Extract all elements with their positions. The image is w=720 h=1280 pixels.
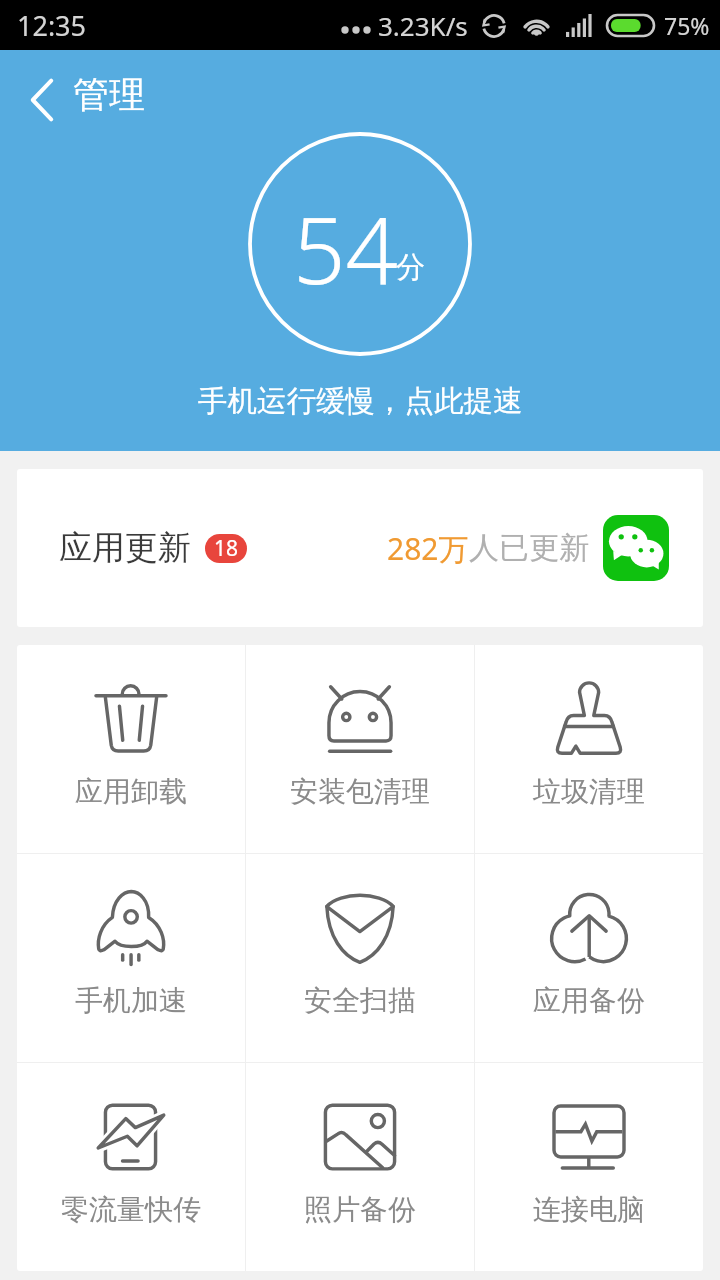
staticText: 连接电脑 (533, 1192, 645, 1227)
staticText: 18 (214, 534, 239, 563)
staticText: 手机运行缓慢，点此提速 (198, 383, 523, 420)
staticText: 安装包清理 (290, 774, 430, 809)
staticText: 手机加速 (75, 983, 187, 1018)
button[interactable]: 连接电脑 (475, 1063, 703, 1271)
staticText: 应用备份 (533, 983, 645, 1018)
staticText: 零流量快传 (61, 1192, 201, 1227)
staticText: 282万 (387, 528, 469, 569)
button[interactable]: 零流量快传 (17, 1063, 245, 1271)
staticText: 分 (396, 249, 425, 286)
button[interactable]: 应用卸载 (17, 645, 245, 853)
button[interactable]: 安全扫描 (246, 854, 474, 1062)
button[interactable]: 手机加速 (17, 854, 245, 1062)
staticText: 3.23K/s (378, 8, 468, 43)
staticText: 垃圾清理 (533, 774, 645, 809)
button[interactable]: Phone score 54 (248, 132, 472, 356)
staticText: 管理 (73, 72, 145, 117)
button[interactable]: 手机运行缓慢，点此提速 (198, 383, 523, 420)
staticText: 照片备份 (304, 1192, 416, 1227)
button[interactable]: 应用备份 (475, 854, 703, 1062)
staticText: 75% (664, 10, 710, 41)
button[interactable]: 垃圾清理 (475, 645, 703, 853)
staticText: 应用更新 (59, 527, 191, 569)
button[interactable]: Back (14, 72, 70, 128)
staticText: 应用卸载 (75, 774, 187, 809)
button[interactable]: 安装包清理 (246, 645, 474, 853)
button[interactable]: 应用更新 (17, 469, 703, 627)
staticText: 人已更新 (469, 529, 589, 567)
button[interactable]: 照片备份 (246, 1063, 474, 1271)
staticText: 12:35 (17, 7, 87, 44)
staticText: 54 (293, 186, 399, 311)
staticText: 安全扫描 (304, 983, 416, 1018)
